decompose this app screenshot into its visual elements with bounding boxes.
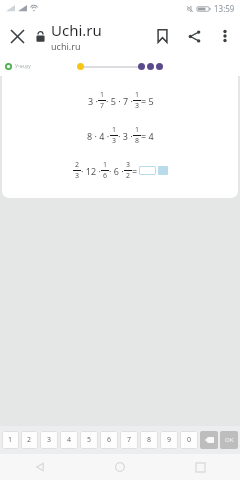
staticText: 4	[67, 435, 72, 445]
button[interactable]: Share	[178, 20, 210, 52]
staticText: 3	[47, 435, 52, 445]
staticText: 8 · 4 ·	[87, 130, 110, 142]
staticText: Uchi.ru	[51, 20, 102, 40]
staticText: 3	[133, 101, 141, 111]
staticText: · 5 · 7 ·	[106, 95, 133, 107]
staticText: · 12 ·	[81, 165, 101, 177]
staticText: 1	[133, 90, 141, 100]
staticText: 13:59	[214, 3, 235, 14]
staticText: 2	[124, 171, 132, 181]
button[interactable]: 1	[2, 431, 19, 449]
button[interactable]: 5	[80, 431, 98, 449]
button[interactable]	[139, 166, 156, 175]
button[interactable]	[158, 166, 168, 175]
button[interactable]: Bookmark	[146, 20, 178, 52]
staticText: 3	[110, 136, 118, 146]
button[interactable]: Close	[0, 19, 34, 53]
staticText: 6	[107, 435, 112, 445]
staticText: OK	[225, 436, 234, 444]
button[interactable]: 0	[180, 431, 198, 449]
button[interactable]: 4	[60, 431, 78, 449]
button[interactable]: 8	[140, 431, 158, 449]
staticText: 1	[110, 125, 118, 135]
staticText: 7	[127, 435, 132, 445]
staticText: 1	[98, 90, 106, 100]
button[interactable]: 9	[160, 431, 178, 449]
button[interactable]: OK	[220, 431, 238, 449]
staticText: 0	[187, 435, 192, 445]
button[interactable]: 2	[21, 431, 38, 449]
staticText: 3	[124, 160, 132, 170]
staticText: 8	[147, 435, 152, 445]
staticText: 3 ·	[88, 95, 98, 107]
button[interactable]: Учи.ру	[5, 63, 31, 70]
staticText: = 4	[141, 130, 154, 142]
staticText: 1	[101, 160, 109, 170]
button[interactable]: 7	[120, 431, 138, 449]
staticText: · 6 ·	[109, 165, 124, 177]
staticText: 2	[73, 160, 81, 170]
button[interactable]: Home	[80, 454, 160, 480]
staticText: 5	[87, 435, 92, 445]
staticText: 1	[8, 435, 13, 445]
button[interactable]: 3	[40, 431, 58, 449]
staticText: 8	[133, 136, 141, 146]
staticText: 3	[73, 171, 81, 181]
staticText: 9	[167, 435, 172, 445]
staticText: = 5	[141, 95, 154, 107]
staticText: uchi.ru	[51, 40, 81, 52]
staticText: 2	[27, 435, 32, 445]
staticText: 7	[98, 101, 106, 111]
button[interactable]: Backspace	[200, 431, 218, 449]
button[interactable]: Recent apps	[160, 454, 240, 480]
staticText: 6	[101, 171, 109, 181]
staticText: =	[132, 165, 138, 177]
staticText: · 3 ·	[118, 130, 133, 142]
staticText: Учи.ру	[15, 63, 31, 70]
button[interactable]: 6	[100, 431, 118, 449]
staticText: 1	[133, 125, 141, 135]
button[interactable]: More options	[210, 21, 240, 51]
